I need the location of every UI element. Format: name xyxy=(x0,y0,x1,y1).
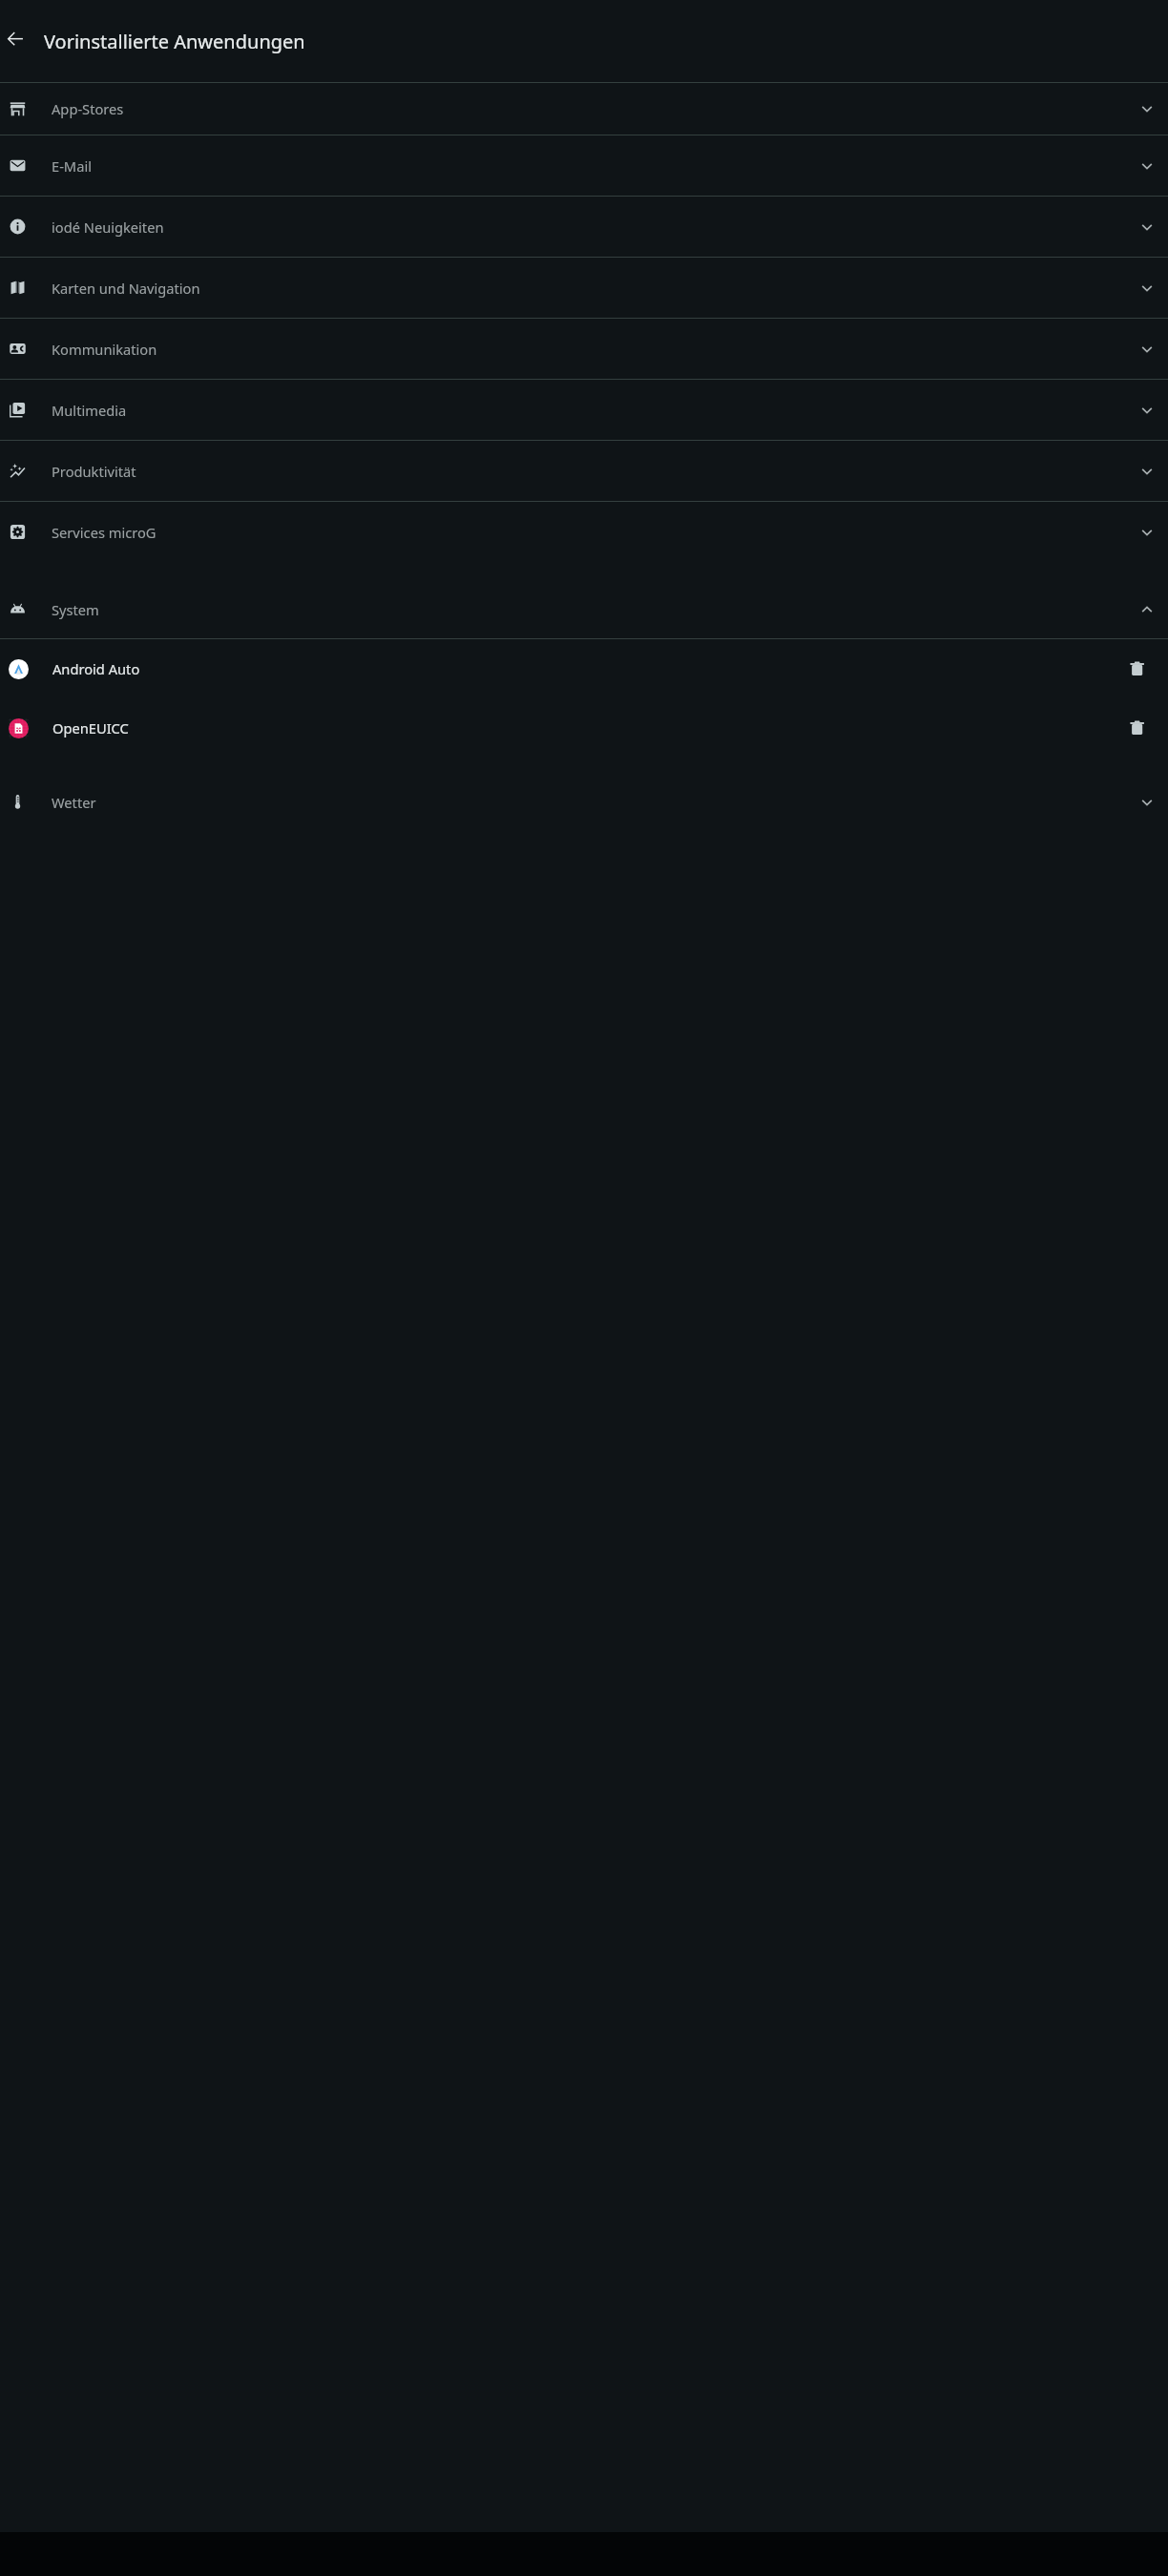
button[interactable]: Produktivität xyxy=(0,441,1168,501)
button[interactable]: Services microG xyxy=(0,502,1168,562)
button[interactable]: Deinstallieren xyxy=(1128,718,1148,738)
staticText: Karten und Navigation xyxy=(52,279,200,298)
staticText: Kommunikation xyxy=(52,340,157,359)
button[interactable]: System xyxy=(0,580,1168,638)
staticText: OpenEUICC xyxy=(52,718,129,737)
staticText: Services microG xyxy=(52,523,156,542)
button[interactable]: Deinstallieren xyxy=(1128,659,1148,679)
staticText: Produktivität xyxy=(52,462,136,481)
staticText: E-Mail xyxy=(52,156,92,176)
button[interactable]: Wetter xyxy=(0,776,1168,828)
staticText: iodé Neuigkeiten xyxy=(52,218,164,237)
button[interactable]: Android Auto xyxy=(0,639,1168,698)
button[interactable]: Zurück xyxy=(6,29,31,53)
staticText: Multimedia xyxy=(52,401,127,420)
staticText: Wetter xyxy=(52,793,96,812)
button[interactable]: Karten und Navigation xyxy=(0,258,1168,318)
button[interactable]: E-Mail xyxy=(0,135,1168,196)
button[interactable]: OpenEUICC xyxy=(0,698,1168,758)
staticText: System xyxy=(52,600,99,619)
button[interactable]: Multimedia xyxy=(0,380,1168,440)
staticText: Vorinstallierte Anwendungen xyxy=(44,29,305,54)
button[interactable]: iodé Neuigkeiten xyxy=(0,197,1168,257)
staticText: Android Auto xyxy=(52,659,140,678)
button[interactable]: Kommunikation xyxy=(0,319,1168,379)
staticText: App-Stores xyxy=(52,99,124,118)
button[interactable]: App-Stores xyxy=(0,83,1168,135)
